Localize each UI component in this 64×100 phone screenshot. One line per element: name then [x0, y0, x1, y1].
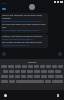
button[interactable]: Key [15, 65, 21, 68]
button[interactable]: Key [9, 70, 14, 73]
button[interactable]: Key [1, 65, 7, 68]
button[interactable]: Key [48, 70, 54, 73]
button[interactable]: Key [28, 65, 33, 68]
staticText: Thanks, I will check the report now and [2, 35, 43, 38]
button[interactable]: Here is the summary of the latest build … [2, 14, 47, 32]
staticText: also please review the new deploy plan [2, 41, 42, 44]
button[interactable]: Key [15, 75, 20, 78]
staticText: 9:41 [2, 1, 7, 4]
button[interactable]: Key [34, 75, 40, 78]
button[interactable]: Search [52, 80, 63, 83]
button[interactable]: Send [58, 52, 62, 56]
button[interactable]: Key [9, 75, 14, 78]
staticText: Thanks [28, 60, 37, 63]
button[interactable]: Key [34, 70, 40, 73]
button[interactable]: Key [21, 75, 26, 78]
button[interactable]: Add attachment [2, 52, 6, 56]
staticText: review.build.example.com/status/9143 [2, 20, 42, 23]
button[interactable]: Key [46, 65, 51, 68]
button[interactable]: Key [48, 75, 54, 78]
button[interactable]: Key [27, 75, 33, 78]
button[interactable]: Key [58, 65, 63, 68]
button[interactable]: Key [8, 65, 14, 68]
button[interactable]: Key [34, 65, 39, 68]
button[interactable]: Backspace [55, 75, 63, 78]
staticText: ci.example.com/jobs/4412 [2, 44, 29, 47]
button[interactable]: Comma [9, 80, 15, 83]
button[interactable]: Key [41, 70, 47, 73]
button[interactable]: Key [3, 70, 8, 73]
button[interactable]: Thanks, I will check the report now and [2, 35, 47, 47]
button[interactable]: Key [52, 65, 57, 68]
button[interactable]: Key [41, 75, 47, 78]
staticText: tracker.example.com/issue/221 [2, 38, 34, 41]
button[interactable]: Period [45, 80, 51, 83]
button[interactable]: Voice input [4, 94, 7, 97]
button[interactable]: Key [15, 70, 20, 73]
button[interactable]: Shift [1, 75, 8, 78]
staticText: docs.example.com/release-notes/v8 [2, 29, 39, 32]
button[interactable]: Key [40, 65, 45, 68]
button[interactable]: Key [21, 70, 26, 73]
button[interactable]: Key [27, 70, 33, 73]
button[interactable]: Symbols [1, 80, 8, 83]
button[interactable]: Key [55, 70, 61, 73]
staticText: Here is the summary of the latest build … [2, 14, 47, 20]
staticText: Let me know when you have looked it over… [2, 23, 47, 29]
button[interactable]: Key [22, 65, 27, 68]
button[interactable]: Back [1, 6, 7, 12]
